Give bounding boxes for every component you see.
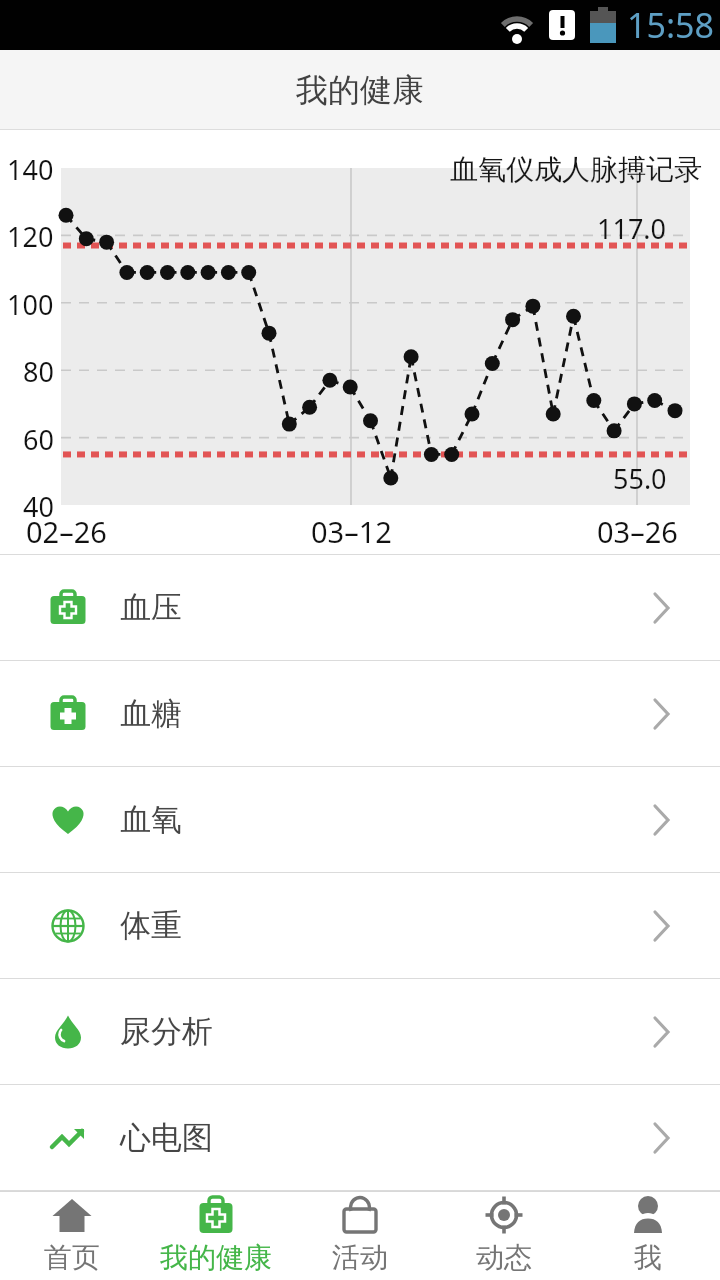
button[interactable]: 体重 <box>0 873 720 979</box>
button[interactable]: 动态 <box>432 1192 576 1280</box>
staticText: 我 <box>634 1240 662 1275</box>
staticText: 15:58 <box>627 2 714 48</box>
staticText: 03–26 <box>597 512 678 551</box>
staticText: 55.0 <box>613 460 667 497</box>
staticText: 100 <box>7 286 54 323</box>
staticText: 血压 <box>120 588 182 627</box>
button[interactable]: 尿分析 <box>0 979 720 1085</box>
staticText: 80 <box>23 353 54 390</box>
button[interactable]: 我的健康 <box>144 1192 288 1280</box>
button[interactable]: 活动 <box>288 1192 432 1280</box>
staticText: 120 <box>7 218 54 255</box>
staticText: 140 <box>7 151 54 188</box>
button[interactable]: 我 <box>576 1192 720 1280</box>
staticText: 体重 <box>120 906 182 945</box>
staticText: 40 <box>23 488 54 525</box>
staticText: 我的健康 <box>296 70 424 110</box>
staticText: 我的健康 <box>160 1240 272 1275</box>
staticText: 60 <box>23 421 54 458</box>
staticText: 血氧 <box>120 800 182 839</box>
staticText: 动态 <box>476 1240 532 1275</box>
staticText: 活动 <box>332 1240 388 1275</box>
staticText: 心电图 <box>120 1118 213 1157</box>
button[interactable]: 心电图 <box>0 1085 720 1191</box>
button[interactable]: 血糖 <box>0 661 720 767</box>
staticText: 血氧仪成人脉搏记录 <box>450 152 702 187</box>
staticText: 血糖 <box>120 694 182 733</box>
button[interactable]: 首页 <box>0 1192 144 1280</box>
button[interactable]: 血压 <box>0 555 720 661</box>
button[interactable]: 血氧 <box>0 767 720 873</box>
staticText: 尿分析 <box>120 1012 213 1051</box>
staticText: 117.0 <box>597 210 667 247</box>
staticText: 03–12 <box>311 512 392 551</box>
staticText: 02–26 <box>26 512 107 551</box>
staticText: 首页 <box>44 1240 100 1275</box>
